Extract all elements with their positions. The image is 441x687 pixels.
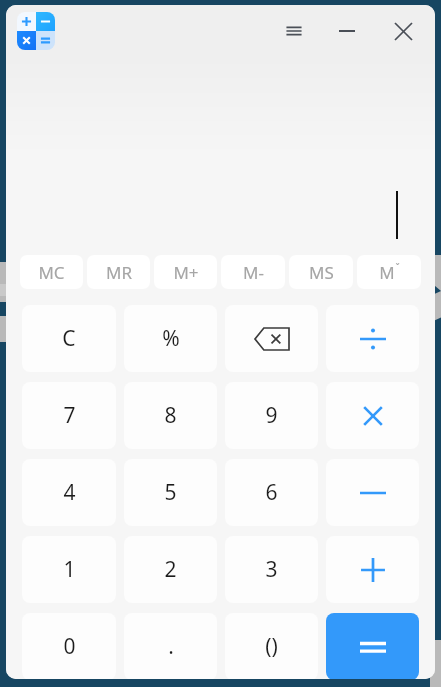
staticText: 9: [265, 401, 278, 430]
staticText: (): [265, 632, 278, 661]
button[interactable]: M: [357, 255, 421, 289]
button[interactable]: Calculator app icon: [17, 12, 55, 50]
button[interactable]: 1: [22, 536, 116, 603]
staticText: M+: [173, 261, 199, 284]
button[interactable]: 7: [22, 382, 116, 449]
button[interactable]: 9: [225, 382, 318, 449]
button[interactable]: MR: [87, 255, 150, 289]
staticText: 3: [265, 555, 278, 584]
staticText: .: [168, 632, 174, 661]
button[interactable]: Minimize: [319, 9, 375, 53]
button[interactable]: %: [124, 305, 217, 372]
button[interactable]: 0: [22, 613, 116, 679]
staticText: MS: [309, 261, 334, 284]
button[interactable]: M+: [154, 255, 217, 289]
button[interactable]: MC: [20, 255, 83, 289]
button[interactable]: 5: [124, 459, 217, 526]
staticText: 5: [164, 478, 177, 507]
staticText: C: [62, 324, 76, 353]
staticText: 6: [265, 478, 278, 507]
staticText: MC: [38, 261, 65, 284]
button[interactable]: [326, 613, 419, 679]
staticText: 8: [164, 401, 177, 430]
button[interactable]: 4: [22, 459, 116, 526]
button[interactable]: Close: [375, 9, 431, 53]
button[interactable]: C: [22, 305, 116, 372]
staticText: 1: [63, 555, 76, 584]
staticText: M: [379, 261, 395, 284]
button[interactable]: [326, 459, 419, 526]
staticText: MR: [106, 261, 132, 284]
button[interactable]: MS: [289, 255, 353, 289]
staticText: ˇ: [395, 261, 400, 275]
button[interactable]: 6: [225, 459, 318, 526]
other: Backspace: [255, 328, 289, 350]
staticText: M-: [243, 261, 264, 284]
staticText: 2: [164, 555, 177, 584]
button[interactable]: M-: [221, 255, 285, 289]
button[interactable]: 8: [124, 382, 217, 449]
button[interactable]: [326, 382, 419, 449]
staticText: 4: [63, 478, 76, 507]
button[interactable]: Backspace: [225, 305, 318, 372]
button[interactable]: (): [225, 613, 318, 679]
button[interactable]: [326, 536, 419, 603]
staticText: 7: [63, 401, 76, 430]
staticText: 0: [63, 632, 76, 661]
button[interactable]: Menu: [269, 9, 319, 53]
button[interactable]: .: [124, 613, 217, 679]
button[interactable]: 3: [225, 536, 318, 603]
button[interactable]: [326, 305, 419, 372]
button[interactable]: 2: [124, 536, 217, 603]
staticText: %: [162, 324, 180, 353]
